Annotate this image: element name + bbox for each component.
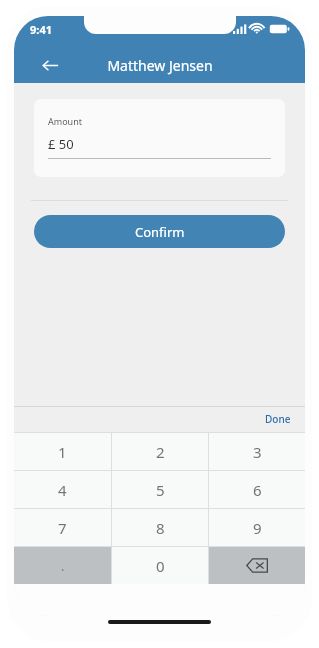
button[interactable]: 2 — [112, 433, 208, 470]
staticText: 0 — [156, 556, 165, 576]
button[interactable]: 6 — [209, 471, 305, 508]
staticText: Done — [265, 412, 291, 426]
staticText: 5 — [156, 480, 165, 500]
button[interactable]: 7 — [14, 509, 111, 546]
button[interactable]: Confirm — [34, 215, 285, 248]
staticText: 1 — [58, 442, 67, 462]
staticText: 6 — [253, 480, 262, 500]
staticText: 4 — [58, 480, 67, 500]
button[interactable]: 9 — [209, 509, 305, 546]
button[interactable]: Back — [34, 49, 66, 81]
staticText: 3 — [253, 442, 262, 462]
staticText: Confirm — [135, 223, 185, 241]
staticText: 2 — [156, 442, 165, 462]
button[interactable]: Backspace — [209, 547, 305, 584]
button[interactable]: 0 — [112, 547, 208, 584]
button[interactable]: Amount — [34, 99, 285, 177]
staticText: 9:41 — [30, 22, 52, 37]
button[interactable]: Done — [261, 409, 295, 429]
staticText: Amount — [48, 115, 82, 127]
button[interactable]: 1 — [14, 433, 111, 470]
staticText: 9 — [253, 518, 262, 538]
staticText: £ 50 — [48, 135, 74, 153]
staticText: 7 — [58, 518, 67, 538]
button[interactable]: 4 — [14, 471, 111, 508]
staticText: 8 — [156, 518, 165, 538]
button[interactable]: 5 — [112, 471, 208, 508]
button[interactable]: 3 — [209, 433, 305, 470]
button[interactable]: 8 — [112, 509, 208, 546]
staticText: . — [61, 557, 65, 575]
staticText: Matthew Jensen — [107, 56, 213, 75]
